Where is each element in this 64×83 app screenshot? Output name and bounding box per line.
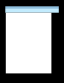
button[interactable]: App title (6, 9, 16, 13)
